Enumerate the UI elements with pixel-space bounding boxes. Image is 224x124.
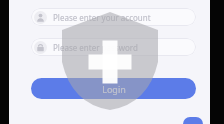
button[interactable]: Account field <box>31 8 196 26</box>
staticText: Please enter your account <box>53 12 151 23</box>
button[interactable]: Add <box>183 117 203 124</box>
button[interactable]: Password field <box>31 38 196 56</box>
staticText: Login <box>102 83 126 95</box>
staticText: Please enter password <box>53 42 138 53</box>
button[interactable]: Login <box>31 78 196 99</box>
